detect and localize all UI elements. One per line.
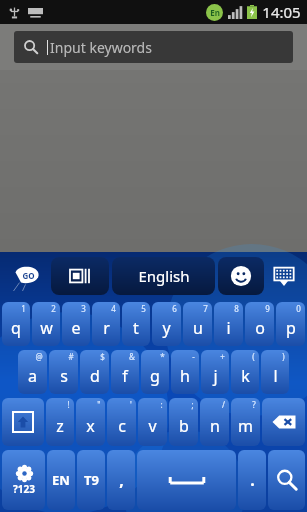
staticText: m	[238, 415, 253, 437]
staticText: +	[220, 351, 225, 362]
button[interactable]: +	[201, 350, 229, 394]
staticText: ,	[119, 469, 124, 491]
staticText: T9	[84, 471, 99, 489]
button[interactable]: ,	[107, 450, 135, 510]
button[interactable]: Keyboard layout	[51, 257, 109, 295]
staticText: English	[138, 266, 190, 286]
button[interactable]: 7	[183, 302, 212, 346]
button[interactable]: '	[107, 398, 136, 446]
staticText: *	[160, 351, 165, 362]
staticText: q	[11, 317, 21, 339]
staticText: @	[35, 351, 43, 362]
button[interactable]: 3	[62, 302, 90, 346]
button[interactable]: Hide keyboard	[264, 257, 304, 295]
button[interactable]: 6	[152, 302, 181, 346]
button[interactable]: ;	[169, 398, 198, 446]
button[interactable]: "	[76, 398, 105, 446]
staticText: z	[56, 415, 64, 437]
staticText: 0	[296, 303, 301, 314]
button[interactable]: 2	[32, 302, 60, 346]
staticText: $	[100, 351, 105, 362]
staticText: 7	[203, 303, 208, 314]
staticText: )	[282, 351, 285, 362]
staticText: 9	[265, 303, 270, 314]
button[interactable]: !	[46, 398, 74, 446]
button[interactable]: *	[141, 350, 169, 394]
staticText: 2	[51, 303, 56, 314]
staticText: y	[162, 317, 171, 339]
button[interactable]: -	[171, 350, 199, 394]
button[interactable]: /	[200, 398, 229, 446]
staticText: &	[129, 351, 135, 362]
staticText: 4	[111, 303, 116, 314]
staticText: a	[28, 365, 37, 387]
staticText: l	[273, 365, 278, 387]
button[interactable]: 8	[214, 302, 243, 346]
button[interactable]: Backspace	[262, 398, 305, 446]
button[interactable]: Space	[137, 450, 236, 510]
staticText: h	[180, 365, 190, 387]
staticText: 5	[141, 303, 146, 314]
staticText: :	[160, 399, 163, 410]
staticText: t	[133, 317, 139, 339]
staticText: i	[226, 317, 231, 339]
button[interactable]: Shift	[2, 398, 44, 446]
button[interactable]: T9	[77, 450, 105, 510]
staticText: x	[86, 415, 95, 437]
staticText: b	[179, 415, 189, 437]
staticText: En	[210, 7, 220, 18]
staticText: !	[67, 399, 70, 410]
staticText: Input keywords	[50, 38, 152, 57]
button[interactable]: :	[138, 398, 167, 446]
button[interactable]: 0	[276, 302, 305, 346]
staticText: (	[252, 351, 255, 362]
staticText: w	[40, 317, 53, 339]
staticText: "	[97, 399, 101, 410]
button[interactable]: Search	[268, 450, 305, 510]
staticText: 8	[234, 303, 239, 314]
staticText: e	[71, 317, 81, 339]
button[interactable]: 1	[2, 302, 30, 346]
staticText: g	[150, 365, 160, 387]
staticText: EN	[52, 471, 70, 489]
button[interactable]: ?	[231, 398, 260, 446]
staticText: 14:05	[262, 2, 301, 22]
button[interactable]: )	[261, 350, 289, 394]
staticText: -	[192, 351, 195, 362]
button[interactable]: Emoji	[218, 257, 264, 295]
button[interactable]: EN	[47, 450, 75, 510]
staticText: GO	[22, 270, 35, 281]
button[interactable]: Symbols and settings	[2, 450, 45, 510]
button[interactable]: .	[238, 450, 266, 510]
button[interactable]: English	[112, 257, 215, 295]
staticText: o	[255, 317, 265, 339]
staticText: s	[60, 365, 68, 387]
staticText: 1	[21, 303, 26, 314]
button[interactable]: @	[18, 350, 47, 394]
staticText: n	[210, 415, 220, 437]
staticText: c	[118, 415, 126, 437]
staticText: #	[68, 351, 74, 362]
staticText: '	[130, 399, 132, 410]
staticText: 6	[172, 303, 177, 314]
staticText: /	[222, 399, 225, 410]
staticText: .	[250, 469, 255, 491]
staticText: ?123	[13, 482, 35, 496]
staticText: d	[90, 365, 100, 387]
button[interactable]: Input keywords	[14, 31, 293, 63]
button[interactable]: (	[231, 350, 259, 394]
button[interactable]: 5	[122, 302, 150, 346]
staticText: u	[193, 317, 203, 339]
button[interactable]: $	[80, 350, 109, 394]
button[interactable]: 4	[92, 302, 120, 346]
staticText: j	[213, 365, 218, 387]
staticText: ?	[252, 399, 256, 410]
button[interactable]: 9	[245, 302, 274, 346]
button[interactable]: &	[111, 350, 139, 394]
button[interactable]: GO Keyboard	[3, 257, 51, 295]
staticText: v	[148, 415, 157, 437]
staticText: p	[286, 317, 296, 339]
button[interactable]: #	[49, 350, 78, 394]
staticText: 3	[81, 303, 86, 314]
staticText: ;	[191, 399, 194, 410]
